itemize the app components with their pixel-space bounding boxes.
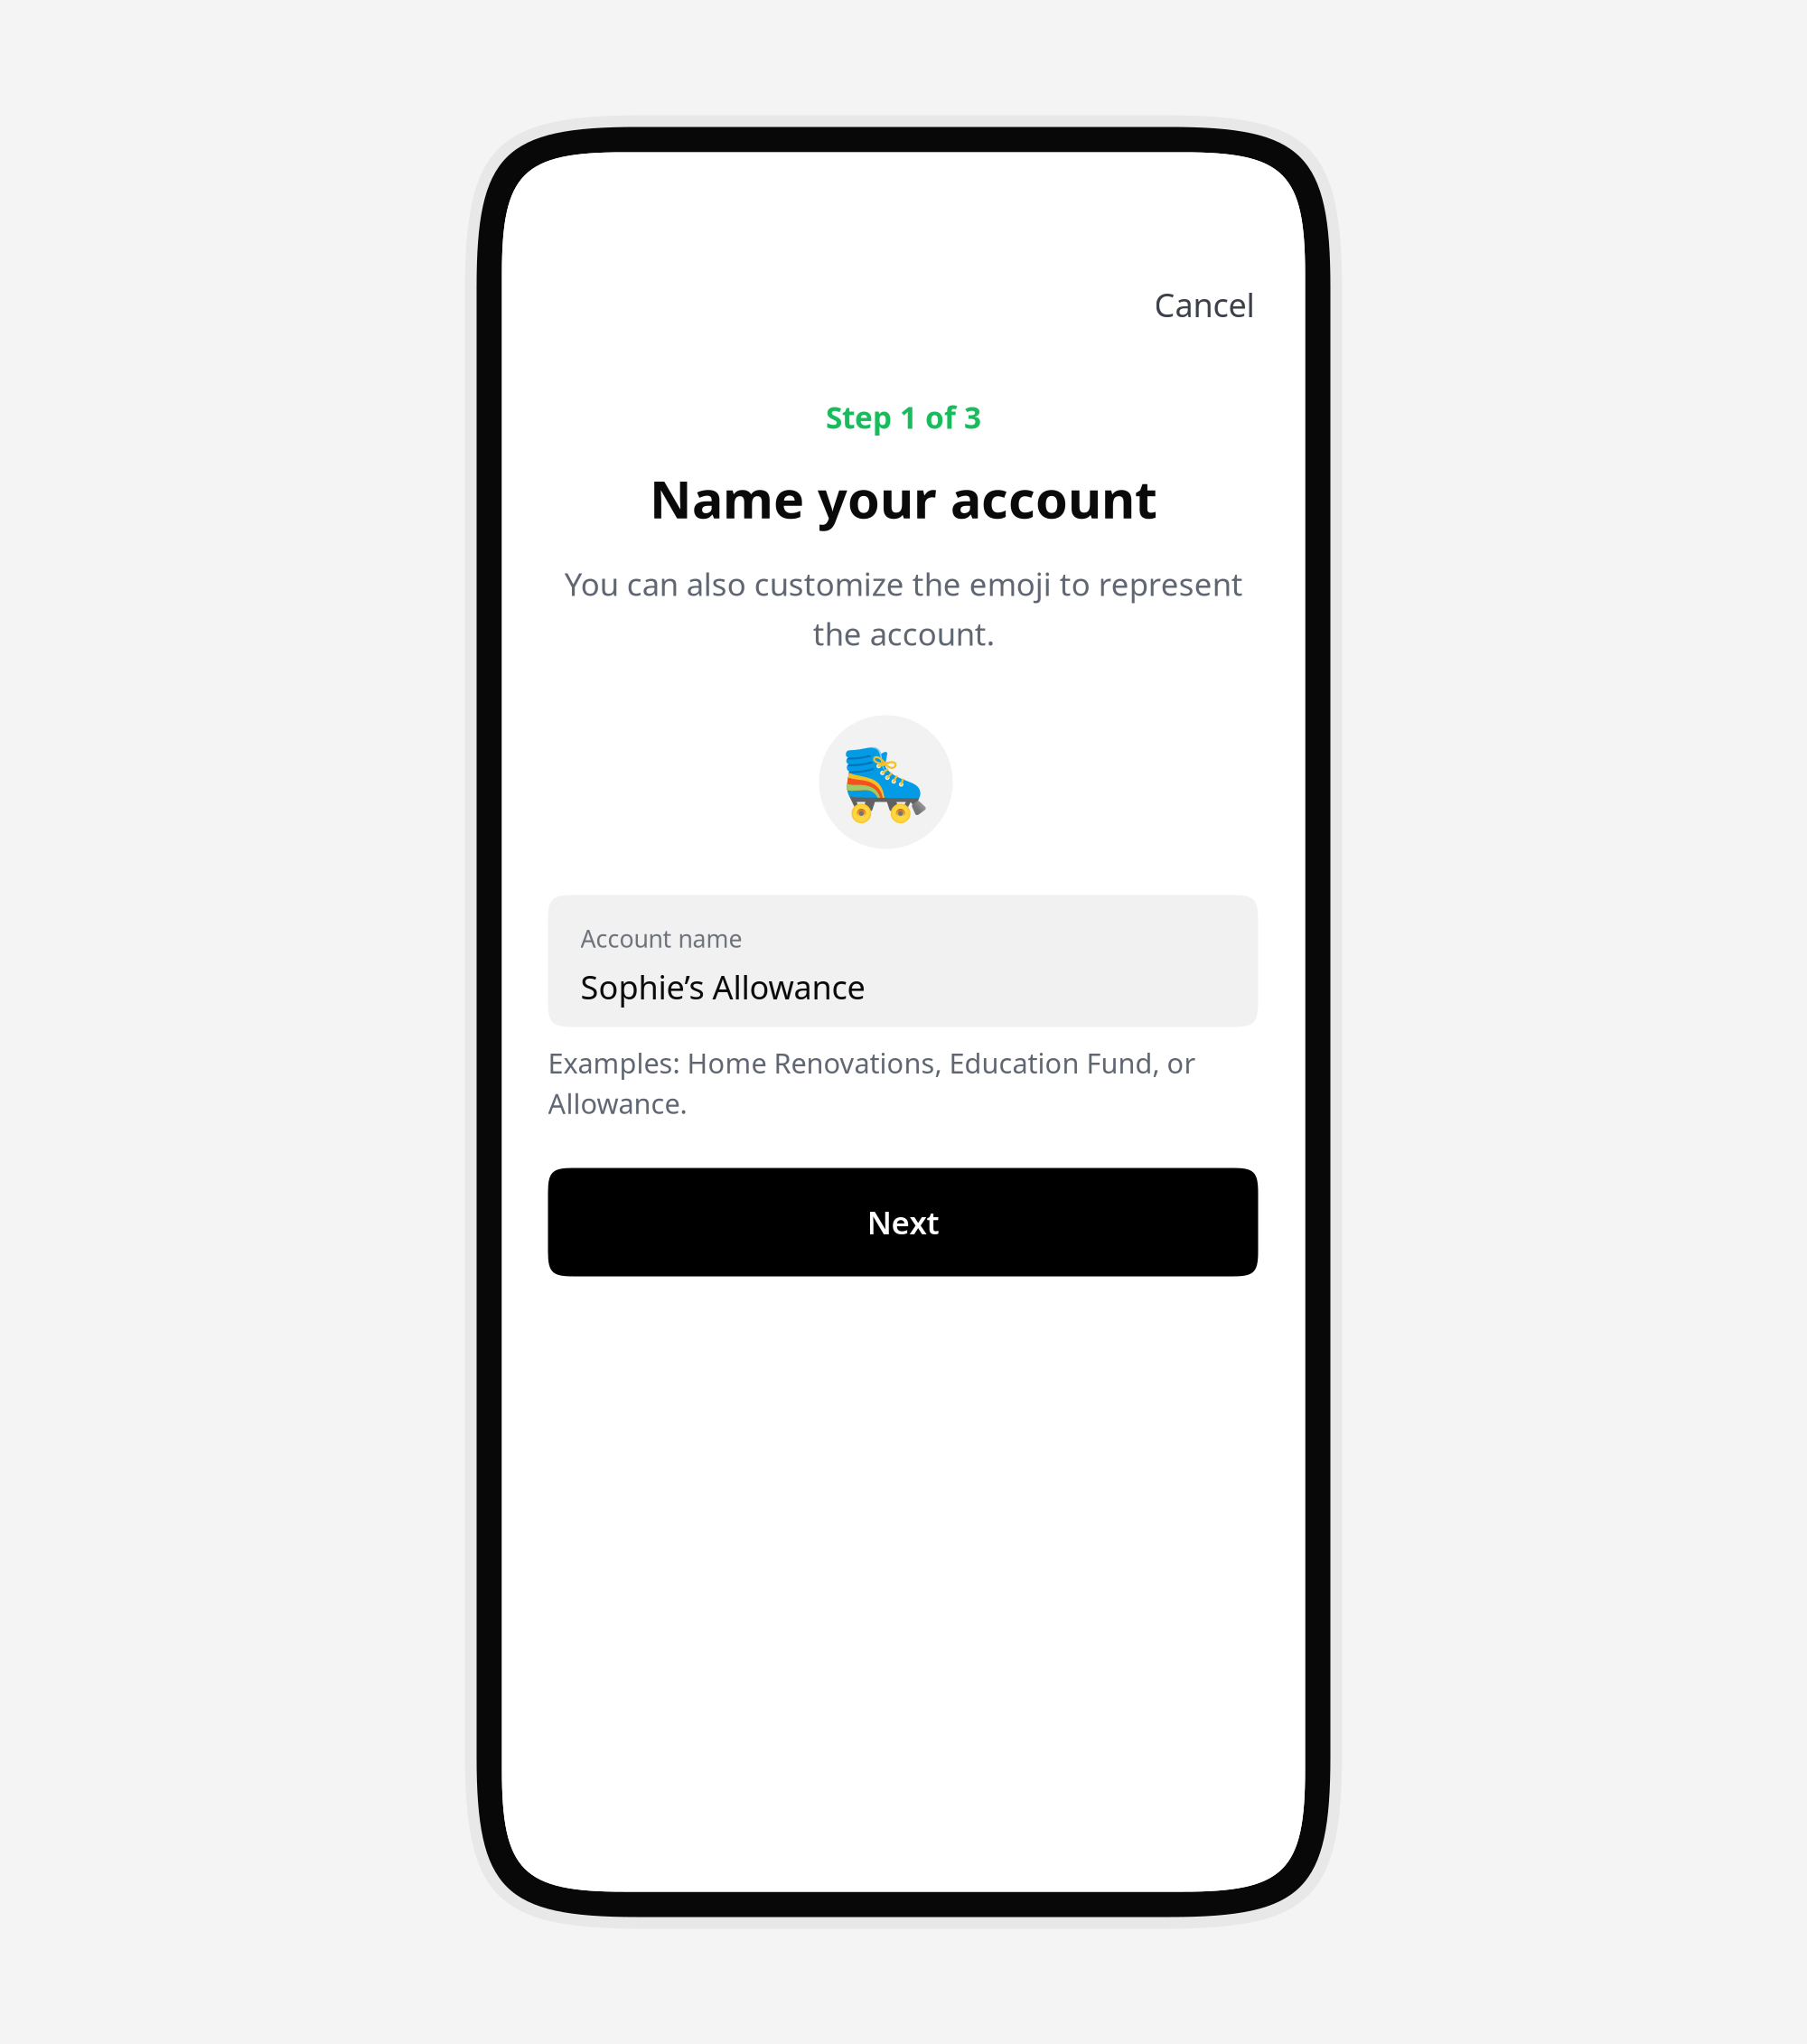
button[interactable]: Change emoji: [819, 715, 953, 849]
button[interactable]: Next: [548, 1168, 1258, 1276]
button[interactable]: Account name: [548, 895, 1258, 1027]
staticText: Examples: Home Renovations, Education Fu…: [548, 1044, 1196, 1122]
staticText: 🛼: [839, 739, 932, 825]
button[interactable]: Cancel: [1131, 273, 1260, 336]
staticText: Next: [867, 1201, 939, 1243]
staticText: Step 1 of 3: [826, 397, 981, 437]
staticText: Sophie’s Allowance: [580, 965, 865, 1008]
staticText: You can also customize the emoji to repr…: [564, 563, 1243, 654]
staticText: Cancel: [1154, 283, 1255, 326]
staticText: Account name: [580, 922, 742, 954]
staticText: Name your account: [650, 464, 1157, 533]
